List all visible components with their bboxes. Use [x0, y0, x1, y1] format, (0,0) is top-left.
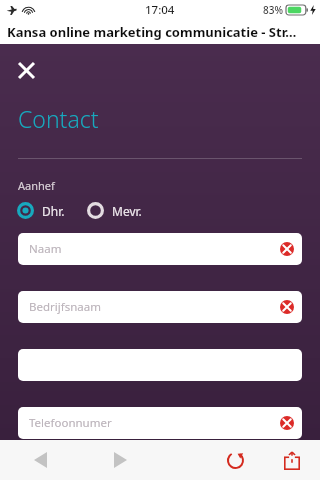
staticText: Telefoonnumer: [29, 415, 112, 431]
staticText: Contact: [18, 103, 99, 134]
button[interactable]: [18, 349, 302, 381]
staticText: Aanhef: [18, 178, 55, 193]
staticText: 17:04: [145, 2, 175, 18]
button[interactable]: Naam: [18, 233, 302, 265]
button[interactable]: Back: [0, 440, 80, 480]
button[interactable]: Telefoonnumer: [18, 407, 302, 439]
button[interactable]: Dhr.: [17, 202, 65, 219]
staticText: Kansa online marketing communicatie - St…: [7, 23, 297, 41]
button[interactable]: Mevr.: [87, 202, 142, 219]
staticText: Bedrijfsnaam: [29, 299, 101, 315]
button[interactable]: Close: [10, 54, 42, 86]
button[interactable]: Bedrijfsnaam: [18, 291, 302, 323]
staticText: 83%: [263, 3, 283, 17]
button[interactable]: Reload: [206, 440, 264, 480]
button[interactable]: Share: [264, 440, 320, 480]
staticText: Naam: [29, 241, 62, 257]
staticText: Mevr.: [112, 203, 142, 219]
button[interactable]: Forward: [80, 440, 160, 480]
staticText: Dhr.: [42, 203, 65, 219]
